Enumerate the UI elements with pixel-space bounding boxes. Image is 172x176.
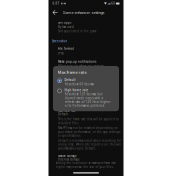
- staticText: Allow pop-up when you receive notificati…: [58, 64, 104, 71]
- staticText: Screenshot: [52, 39, 67, 43]
- staticText: By last used: [58, 25, 74, 29]
- staticText: JPEG: [58, 51, 64, 55]
- staticText: Internal storage: [58, 158, 80, 161]
- staticText: Setting the resolution at maximum frame …: [55, 161, 116, 169]
- staticText: High frame rate: [64, 88, 88, 92]
- staticText: Sort apps listed in the game: [58, 29, 97, 33]
- staticText: Records at 60 fps max: [64, 82, 93, 86]
- staticText: Max frame rate: [57, 70, 86, 75]
- staticText: Records at 120 fps max, but blurred mode…: [64, 92, 110, 108]
- staticText: Game enhancer settings: [62, 10, 104, 15]
- staticText: 6:07: [52, 2, 59, 5]
- button[interactable]: File format: [48, 46, 123, 56]
- staticText: Max FPS may not be reached depending on …: [58, 126, 120, 137]
- button[interactable]: High frame rate: [53, 87, 119, 109]
- button[interactable]: Back: [50, 8, 60, 17]
- staticText: Sort apps: [58, 21, 71, 24]
- staticText: This is the frame rate that will be appl…: [58, 117, 119, 125]
- staticText: File format: [58, 47, 74, 51]
- staticText: Native storage: [58, 154, 77, 158]
- button[interactable]: Make pop-up notifications: [48, 59, 123, 73]
- staticText: Make pop-up notifications: [58, 60, 96, 64]
- button[interactable]: Sort apps: [48, 19, 123, 34]
- staticText: Max frame rate: [58, 109, 76, 112]
- staticText: Default: [64, 78, 75, 82]
- staticText: Default: [58, 112, 68, 116]
- staticText: Default is recommended when recording fo…: [58, 139, 121, 150]
- staticText: 60: [111, 2, 115, 5]
- button[interactable]: Default: [53, 77, 119, 87]
